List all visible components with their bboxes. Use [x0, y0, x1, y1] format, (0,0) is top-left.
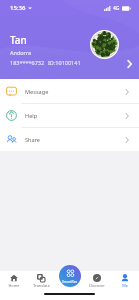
- staticText: 4G: [113, 5, 120, 12]
- button[interactable]: Profile details: [124, 58, 136, 70]
- staticText: Andorra: [10, 49, 32, 56]
- button[interactable]: Share: [0, 128, 139, 151]
- button[interactable]: Home: [0, 271, 27, 292]
- staticText: Translate: [33, 283, 50, 288]
- staticText: Message: [25, 88, 49, 96]
- button[interactable]: Translate: [27, 271, 55, 292]
- staticText: 183****6732: [10, 59, 45, 66]
- staticText: Help: [25, 112, 38, 120]
- staticText: SmartRes: [62, 279, 78, 284]
- button[interactable]: Message: [0, 80, 139, 103]
- staticText: 15:36: [10, 4, 26, 12]
- staticText: Discover: [89, 283, 105, 288]
- button[interactable]: Avatar: [90, 30, 119, 59]
- staticText: Share: [25, 136, 41, 144]
- staticText: Home: [8, 283, 20, 288]
- button[interactable]: Help: [0, 104, 139, 127]
- staticText: ID:10100141: [48, 59, 81, 66]
- button[interactable]: SmartRes: [59, 265, 81, 287]
- staticText: Tan: [10, 33, 27, 47]
- staticText: Me: [122, 283, 128, 288]
- button[interactable]: Me: [111, 271, 139, 292]
- button[interactable]: Discover: [83, 271, 111, 292]
